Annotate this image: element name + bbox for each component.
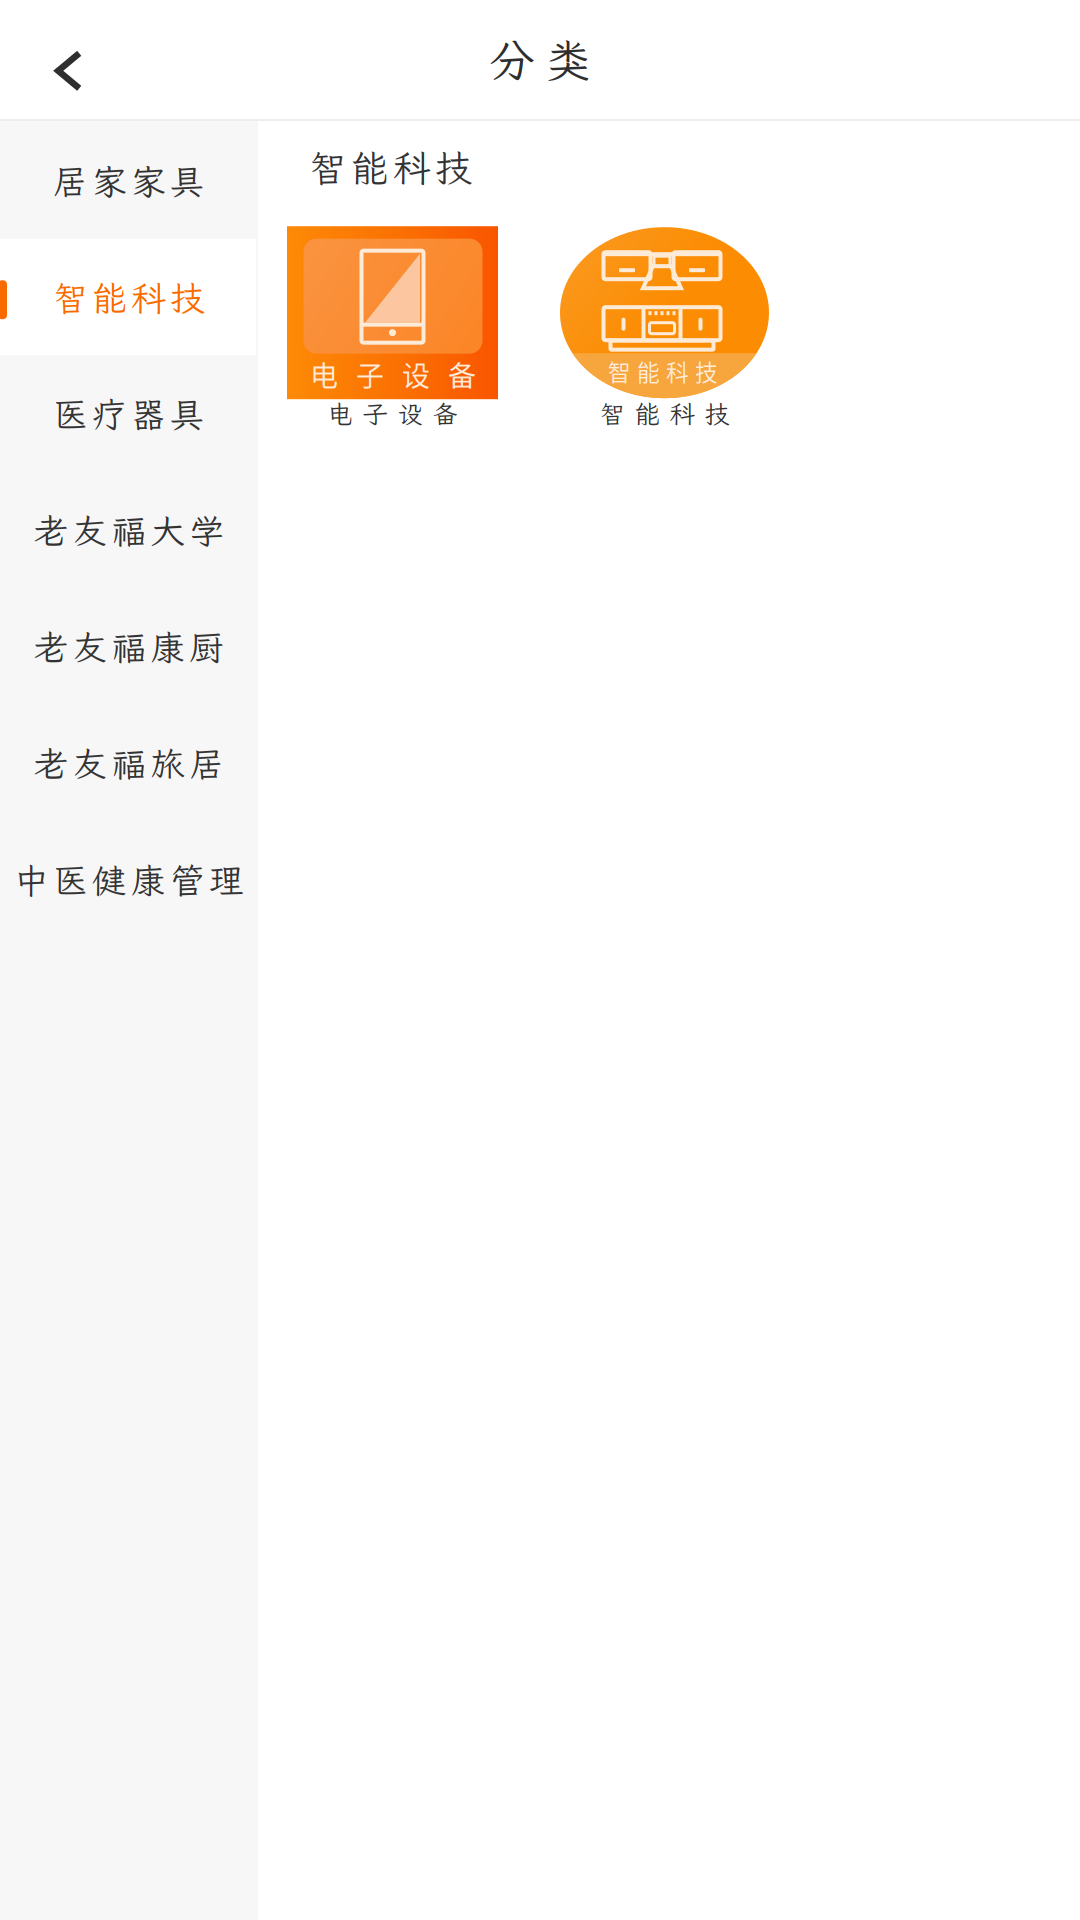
staticText: 老友福大学 bbox=[33, 508, 224, 554]
staticText: 居家家具 bbox=[53, 158, 205, 204]
button[interactable]: 智能科技 bbox=[0, 239, 258, 356]
button[interactable]: Back bbox=[0, 0, 124, 119]
staticText: 智能科技 bbox=[53, 275, 205, 321]
button[interactable]: 老友福康厨 bbox=[0, 589, 258, 705]
button[interactable]: 中医健康管理 bbox=[0, 822, 258, 938]
staticText: 分类 bbox=[489, 30, 590, 89]
staticText: 电子设备 bbox=[310, 354, 476, 394]
button[interactable]: 老友福大学 bbox=[0, 472, 258, 589]
staticText: 智能科技 bbox=[309, 143, 472, 192]
button[interactable]: 居家家具 bbox=[0, 123, 258, 239]
staticText: 智能科技 bbox=[608, 355, 718, 388]
staticText: 老友福康厨 bbox=[33, 624, 224, 670]
button[interactable]: 医疗器具 bbox=[0, 356, 258, 472]
staticText: 电子设备 bbox=[327, 397, 457, 431]
staticText: 中医健康管理 bbox=[14, 857, 244, 903]
button[interactable]: 智能科技 bbox=[559, 226, 770, 431]
staticText: 医疗器具 bbox=[53, 391, 205, 437]
button[interactable]: 老友福旅居 bbox=[0, 705, 258, 822]
staticText: 智能科技 bbox=[599, 397, 729, 431]
button[interactable]: 电子设备 bbox=[287, 226, 498, 431]
staticText: 老友福旅居 bbox=[33, 741, 224, 787]
